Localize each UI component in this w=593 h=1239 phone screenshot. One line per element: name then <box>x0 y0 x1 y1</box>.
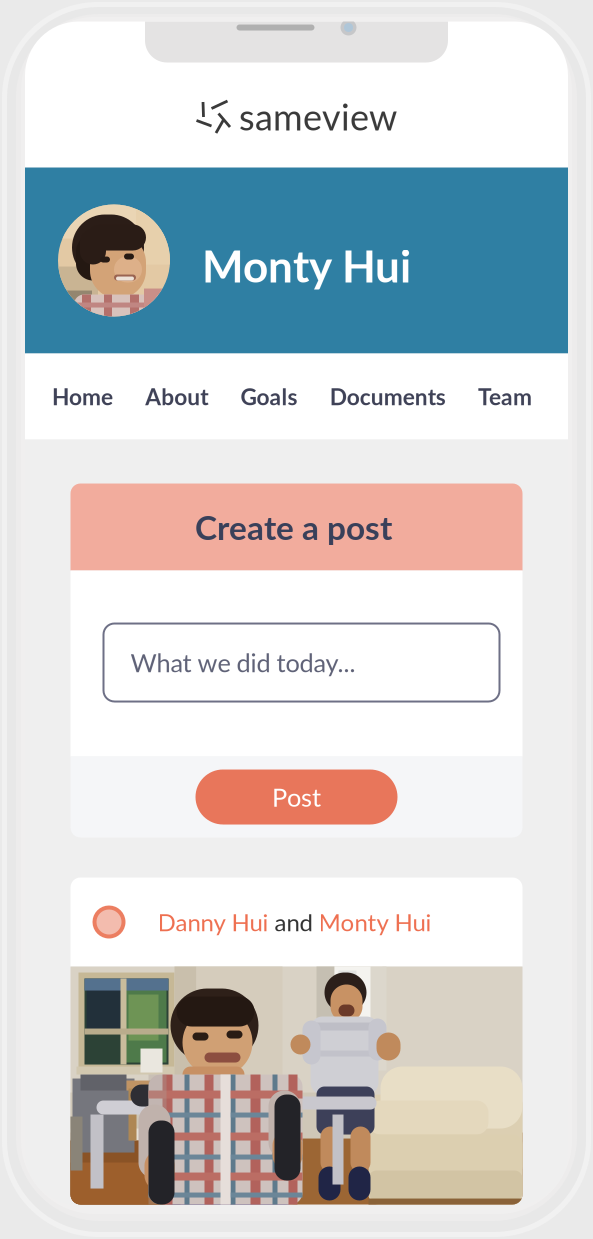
button[interactable]: Documents <box>330 369 446 424</box>
staticText: Monty Hui <box>202 239 411 292</box>
button[interactable]: Team <box>478 369 532 424</box>
button[interactable]: About <box>145 369 208 424</box>
staticText: Team <box>478 383 532 410</box>
staticText: Documents <box>330 383 446 410</box>
staticText: and <box>268 908 318 936</box>
staticText: Monty Hui <box>318 908 431 936</box>
staticText: Post <box>272 782 321 812</box>
staticText: Home <box>52 383 113 410</box>
button[interactable]: Home <box>52 369 113 424</box>
staticText: Create a post <box>195 507 392 547</box>
staticText: Goals <box>240 383 297 410</box>
staticText: sameview <box>239 95 397 138</box>
button[interactable]: Goals <box>240 369 297 424</box>
button[interactable]: Post <box>195 769 397 824</box>
staticText: About <box>145 383 208 410</box>
staticText: What we did today... <box>130 647 355 678</box>
staticText: Danny Hui <box>157 908 268 936</box>
